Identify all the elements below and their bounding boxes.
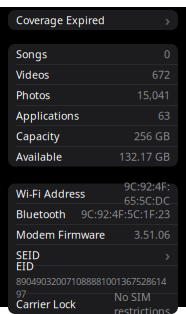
staticText: Available	[16, 149, 62, 164]
staticText: 0	[164, 47, 170, 61]
staticText: SEID	[16, 248, 40, 262]
staticText: 89049032007108888100136752861497	[16, 275, 166, 300]
staticText: Photos	[16, 88, 50, 102]
staticText: Songs	[16, 47, 47, 61]
staticText: Modem Firmware	[16, 227, 105, 242]
button[interactable]: Coverage Expired	[8, 10, 178, 30]
staticText: Capacity	[16, 129, 59, 143]
staticText: 256 GB	[134, 129, 170, 143]
staticText: Videos	[16, 67, 49, 82]
staticText: Carrier Lock	[16, 297, 76, 311]
staticText: 3.51.06	[134, 227, 170, 242]
staticText: Wi-Fi Address	[16, 186, 85, 201]
staticText: 63	[158, 108, 170, 123]
staticText: No SIM restrictions	[114, 290, 170, 314]
staticText: 132.17 GB	[119, 149, 170, 164]
staticText: ›	[165, 245, 170, 265]
staticText: 9C:92:4F:65:5C:DC	[124, 179, 170, 208]
staticText: 9C:92:4F:5C:1F:23	[81, 207, 170, 221]
staticText: Coverage Expired	[16, 13, 105, 27]
staticText: 672	[152, 67, 170, 82]
staticText: Applications	[16, 108, 79, 123]
button[interactable]: SEID	[8, 245, 178, 265]
staticText: EID	[16, 259, 34, 273]
staticText: Bluetooth	[16, 207, 66, 221]
staticText: 15,041	[137, 88, 170, 102]
staticText: ›	[165, 10, 170, 30]
